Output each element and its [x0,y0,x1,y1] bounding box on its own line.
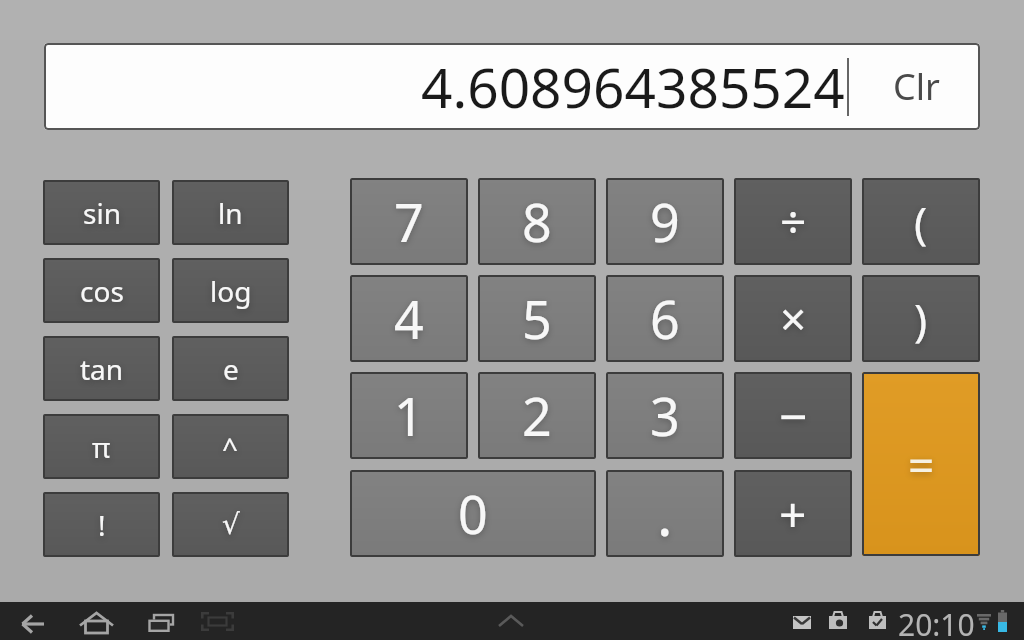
button[interactable]: ^ [172,414,289,479]
staticText: 9 [650,186,680,257]
staticText: 6 [650,283,680,354]
button[interactable]: 6 [606,275,724,362]
staticText: = [908,433,935,496]
staticText: 8 [522,186,552,257]
staticText: ÷ [780,190,807,253]
button[interactable]: 8 [478,178,596,265]
button[interactable]: − [734,372,852,459]
staticText: 4 [394,283,424,354]
button[interactable]: 5 [478,275,596,362]
staticText: sin [83,194,121,232]
staticText: ln [218,194,243,232]
staticText: 7 [394,186,424,257]
button[interactable]: ! [43,492,160,557]
staticText: tan [80,350,124,388]
button[interactable]: ( [862,178,980,265]
staticText: + [779,481,807,546]
button[interactable]: sin [43,180,160,245]
button[interactable]: 3 [606,372,724,459]
staticText: log [210,272,252,310]
button[interactable]: ln [172,180,289,245]
button[interactable]: 1 [350,372,468,459]
staticText: ) [914,289,928,349]
staticText: . [657,474,673,553]
staticText: 1 [394,380,424,451]
button[interactable]: + [734,470,852,557]
staticText: √ [222,508,240,541]
button[interactable]: = [862,372,980,556]
staticText: π [92,428,111,466]
staticText: 3 [650,380,680,451]
staticText: Clr [893,62,940,111]
button[interactable]: log [172,258,289,323]
staticText: 0 [458,478,488,549]
staticText: cos [80,272,124,310]
staticText: 20:10 [898,604,975,640]
button[interactable]: Clr [893,62,940,111]
button[interactable]: 4 [350,275,468,362]
button[interactable]: e [172,336,289,401]
button[interactable]: × [734,275,852,362]
staticText: 2 [522,380,552,451]
button[interactable]: 0 [350,470,596,557]
button[interactable]: cos [43,258,160,323]
button[interactable]: 7 [350,178,468,265]
button[interactable]: π [43,414,160,479]
button[interactable]: tan [43,336,160,401]
button[interactable] [78,606,116,638]
button[interactable]: √ [172,492,289,557]
button[interactable]: . [606,470,724,557]
staticText: ^ [222,428,239,466]
button[interactable] [144,606,178,638]
staticText: ( [914,192,928,252]
button[interactable]: ÷ [734,178,852,265]
button[interactable]: 9 [606,178,724,265]
staticText: ! [98,506,106,544]
staticText: e [223,350,239,388]
button[interactable]: ) [862,275,980,362]
staticText: × [780,287,807,350]
button[interactable]: 2 [478,372,596,459]
staticText: 4.608964385524 [421,49,845,124]
button[interactable] [14,606,54,638]
staticText: − [779,382,808,450]
staticText: 5 [522,283,552,354]
